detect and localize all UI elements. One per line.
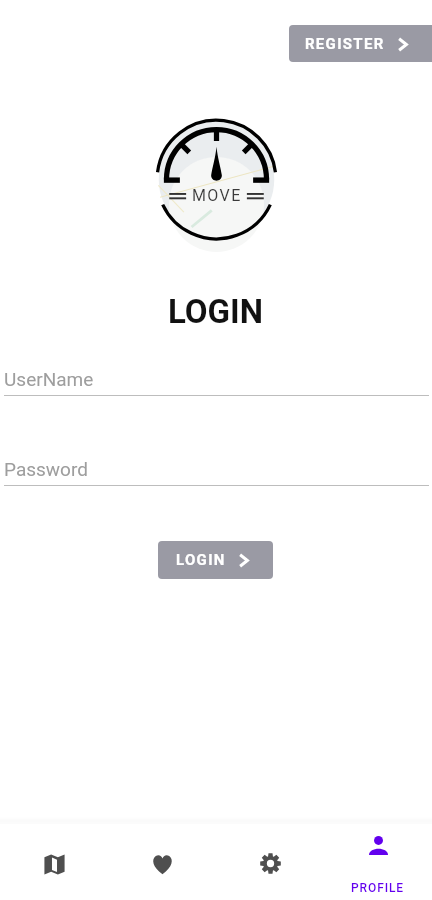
staticText: LOGIN	[168, 292, 264, 331]
button[interactable]: LOGIN	[158, 541, 273, 579]
button[interactable]: REGISTER	[289, 25, 432, 62]
button[interactable]: Map	[0, 824, 108, 900]
staticText: MOVE	[192, 186, 242, 205]
button[interactable]: Settings	[216, 824, 324, 900]
staticText: UserName	[4, 368, 94, 390]
staticText: Password	[4, 458, 88, 480]
staticText: REGISTER	[305, 35, 385, 53]
button[interactable]: PROFILE	[324, 824, 432, 900]
button[interactable]: Favorites	[108, 824, 216, 900]
staticText: PROFILE	[351, 881, 405, 895]
staticText: LOGIN	[176, 551, 226, 569]
